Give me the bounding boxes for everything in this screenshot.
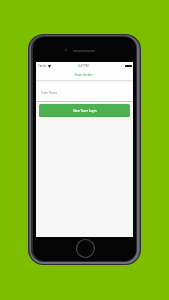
other: Home bbox=[76, 239, 95, 258]
staticText: Team Name bbox=[41, 91, 57, 95]
staticText: Team Kicker bbox=[74, 73, 93, 77]
staticText: New Team Login bbox=[73, 109, 97, 113]
staticText: 3:47 PM bbox=[78, 64, 89, 68]
button[interactable]: New Team Login bbox=[39, 104, 130, 117]
staticText: Carrier bbox=[38, 64, 47, 68]
button[interactable]: Team Name bbox=[36, 83, 133, 102]
